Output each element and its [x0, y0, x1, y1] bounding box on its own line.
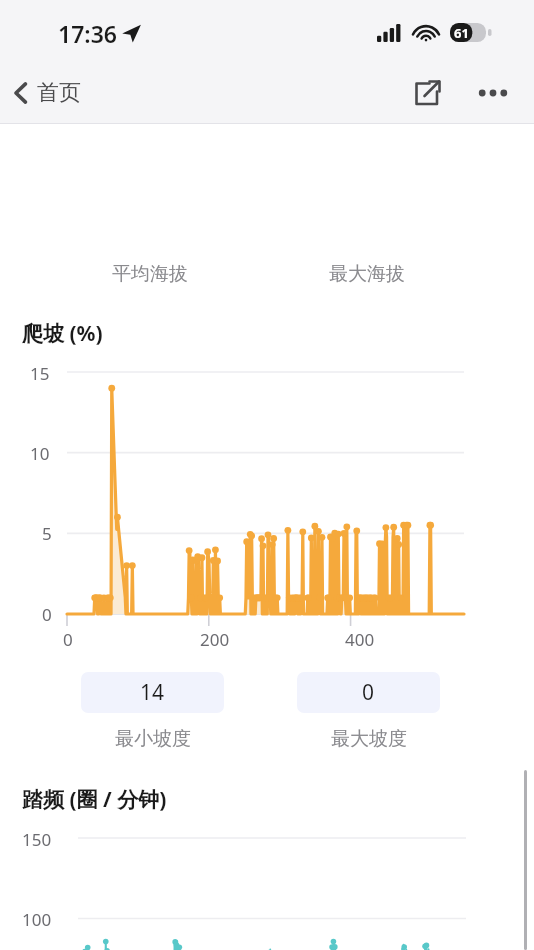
staticText: 100 — [22, 908, 52, 931]
staticText: 61 — [454, 24, 469, 42]
staticText: 0 — [42, 603, 52, 626]
staticText: 爬坡 (%) — [22, 319, 103, 348]
button[interactable]: Share — [404, 71, 448, 115]
staticText: 10 — [30, 442, 50, 465]
staticText: 17:36 — [58, 18, 117, 49]
staticText: 0 — [63, 628, 73, 651]
staticText: 150 — [22, 828, 52, 851]
staticText: 400 — [345, 628, 375, 651]
button[interactable]: 14 — [81, 672, 224, 751]
staticText: 首页 — [37, 79, 81, 107]
staticText: 200 — [200, 628, 230, 651]
staticText: 最大坡度 — [331, 727, 407, 751]
staticText: 0 — [362, 678, 375, 707]
staticText: 5 — [42, 522, 52, 545]
staticText: 踏频 (圈 / 分钟) — [22, 785, 167, 814]
staticText: 最大海拔 — [329, 262, 405, 286]
staticText: 平均海拔 — [112, 262, 188, 286]
staticText: 14 — [140, 678, 165, 707]
button[interactable]: More options — [470, 70, 516, 116]
staticText: 15 — [30, 362, 50, 385]
button[interactable]: 0 — [297, 672, 440, 751]
button[interactable]: 首页 — [0, 71, 91, 115]
staticText: 最小坡度 — [115, 727, 191, 751]
